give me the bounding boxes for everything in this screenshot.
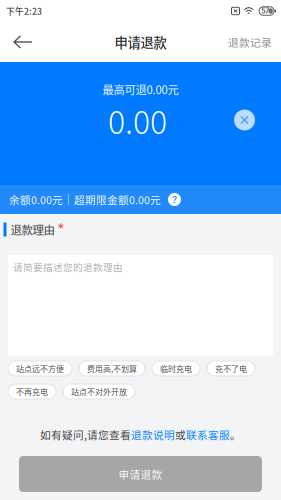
staticText: 站点不对外开放 bbox=[71, 386, 127, 397]
button[interactable]: 清空金额 bbox=[221, 101, 281, 138]
button[interactable]: 不再充电 bbox=[8, 384, 56, 399]
staticText: 申请退款 bbox=[114, 32, 166, 52]
staticText: 或 bbox=[175, 427, 186, 442]
staticText: 如有疑问,请您查看 bbox=[40, 427, 131, 442]
staticText: 余额0.00元 bbox=[9, 192, 63, 207]
staticText: 充不了电 bbox=[215, 363, 247, 374]
staticText: 最高可退0.00元 bbox=[102, 81, 178, 97]
staticText: 超期限金额0.00元 bbox=[74, 192, 161, 207]
staticText: 57 bbox=[261, 7, 269, 15]
button[interactable]: 站点远不方便 bbox=[8, 361, 72, 376]
button[interactable]: 临时充电 bbox=[152, 361, 200, 376]
staticText: 不再充电 bbox=[16, 386, 48, 397]
staticText: 下午2:23 bbox=[6, 5, 42, 17]
button[interactable]: 退款说明 bbox=[131, 427, 175, 442]
staticText: 请简要描述您的退款理由 bbox=[13, 260, 123, 274]
staticText: 。 bbox=[230, 427, 241, 442]
button[interactable]: 充不了电 bbox=[207, 361, 255, 376]
button[interactable]: 退款记录 bbox=[219, 22, 281, 62]
button[interactable]: 返回 bbox=[0, 22, 47, 62]
button[interactable]: 站点不对外开放 bbox=[63, 384, 135, 399]
button[interactable]: 费用高,不划算 bbox=[79, 361, 145, 376]
staticText: 退款说明 bbox=[131, 427, 175, 442]
staticText: 申请退款 bbox=[118, 466, 162, 482]
staticText: 费用高,不划算 bbox=[87, 363, 137, 374]
staticText: 退款理由 bbox=[10, 221, 54, 238]
staticText: ? bbox=[172, 194, 177, 205]
button[interactable]: 联系客服 bbox=[186, 427, 230, 442]
button[interactable]: 申请退款 bbox=[19, 456, 262, 492]
staticText: 0.00 bbox=[108, 97, 167, 143]
staticText: 临时充电 bbox=[160, 363, 192, 374]
staticText: 退款记录 bbox=[228, 34, 272, 50]
staticText: 联系客服 bbox=[186, 427, 230, 442]
button[interactable]: 金额说明 bbox=[165, 187, 184, 212]
staticText: * bbox=[57, 220, 64, 236]
staticText: 站点远不方便 bbox=[16, 363, 64, 374]
